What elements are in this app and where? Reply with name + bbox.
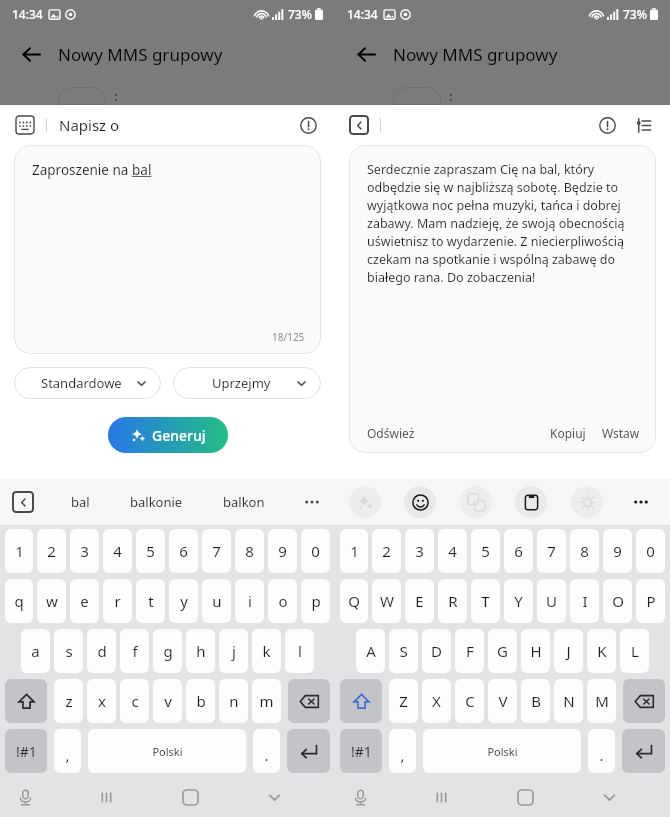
- button[interactable]: Informacje: [295, 112, 321, 138]
- button[interactable]: Polski: [88, 729, 246, 773]
- button[interactable]: 8: [570, 529, 599, 573]
- button[interactable]: D: [422, 629, 451, 673]
- button[interactable]: Ukryj klawiaturę: [592, 780, 626, 814]
- button[interactable]: !#1: [5, 729, 47, 773]
- button[interactable]: i: [235, 579, 264, 623]
- button[interactable]: Enter: [622, 729, 665, 773]
- button[interactable]: m: [252, 679, 281, 723]
- button[interactable]: a: [21, 629, 50, 673]
- button[interactable]: H: [521, 629, 550, 673]
- button[interactable]: Więcej: [626, 487, 656, 517]
- button[interactable]: V: [488, 679, 517, 723]
- button[interactable]: 3: [405, 529, 434, 573]
- button[interactable]: 7: [202, 529, 231, 573]
- button[interactable]: L: [620, 629, 649, 673]
- button[interactable]: Tłumacz: [460, 486, 492, 518]
- button[interactable]: W: [372, 579, 401, 623]
- button[interactable]: d: [87, 629, 116, 673]
- button[interactable]: C: [455, 679, 484, 723]
- button[interactable]: Więcej: [301, 491, 323, 513]
- button[interactable]: 7: [537, 529, 566, 573]
- button[interactable]: X: [422, 679, 451, 723]
- button[interactable]: Mikrofon: [10, 782, 40, 812]
- button[interactable]: Mikrofon: [345, 782, 375, 812]
- button[interactable]: c: [120, 679, 149, 723]
- button[interactable]: K: [587, 629, 616, 673]
- button[interactable]: g: [153, 629, 182, 673]
- button[interactable]: Ekran główny: [508, 780, 542, 814]
- button[interactable]: 2: [37, 529, 66, 573]
- button[interactable]: Q: [340, 579, 368, 623]
- button[interactable]: ,: [389, 729, 416, 773]
- button[interactable]: n: [219, 679, 248, 723]
- button[interactable]: ,: [54, 729, 81, 773]
- button[interactable]: Ostatnie: [89, 780, 123, 814]
- button[interactable]: Emoji: [404, 486, 436, 518]
- button[interactable]: 6: [169, 529, 198, 573]
- button[interactable]: balkon: [219, 487, 269, 517]
- button[interactable]: Asystent: [349, 486, 381, 518]
- button[interactable]: M: [587, 679, 616, 723]
- button[interactable]: .: [253, 729, 280, 773]
- button[interactable]: G: [488, 629, 517, 673]
- button[interactable]: Ustawienia tonu: [630, 112, 656, 138]
- button[interactable]: S: [389, 629, 418, 673]
- button[interactable]: 5: [471, 529, 500, 573]
- button[interactable]: Backspace: [288, 679, 330, 723]
- button[interactable]: R: [438, 579, 467, 623]
- button[interactable]: h: [186, 629, 215, 673]
- button[interactable]: Zaproszenie na: [14, 145, 321, 354]
- button[interactable]: I: [570, 579, 599, 623]
- button[interactable]: Ostatnie: [424, 780, 458, 814]
- button[interactable]: Wstecz: [14, 37, 48, 71]
- button[interactable]: A: [356, 629, 385, 673]
- button[interactable]: Standardowe: [28, 367, 147, 399]
- button[interactable]: 4: [438, 529, 467, 573]
- button[interactable]: Generuj: [108, 417, 228, 453]
- button[interactable]: bal: [67, 487, 94, 517]
- button[interactable]: O: [603, 579, 632, 623]
- button[interactable]: .: [588, 729, 615, 773]
- button[interactable]: l: [285, 629, 314, 673]
- button[interactable]: Enter: [287, 729, 330, 773]
- button[interactable]: Polski: [423, 729, 581, 773]
- button[interactable]: 5: [136, 529, 165, 573]
- button[interactable]: 4: [103, 529, 132, 573]
- button[interactable]: Z: [389, 679, 418, 723]
- button[interactable]: N: [554, 679, 583, 723]
- button[interactable]: 0: [636, 529, 665, 573]
- button[interactable]: Wstecz: [12, 491, 34, 513]
- button[interactable]: E: [405, 579, 434, 623]
- button[interactable]: u: [202, 579, 231, 623]
- button[interactable]: Shift: [340, 679, 382, 723]
- button[interactable]: P: [636, 579, 665, 623]
- button[interactable]: Kopiuj: [550, 425, 586, 441]
- button[interactable]: F: [455, 629, 484, 673]
- button[interactable]: b: [186, 679, 215, 723]
- button[interactable]: z: [54, 679, 83, 723]
- button[interactable]: Backspace: [623, 679, 665, 723]
- button[interactable]: w: [37, 579, 66, 623]
- button[interactable]: Wstecz: [349, 37, 383, 71]
- button[interactable]: r: [103, 579, 132, 623]
- button[interactable]: Ukryj klawiaturę: [257, 780, 291, 814]
- button[interactable]: 0: [301, 529, 330, 573]
- button[interactable]: f: [120, 629, 149, 673]
- button[interactable]: Schowek: [515, 486, 547, 518]
- button[interactable]: B: [521, 679, 550, 723]
- button[interactable]: t: [136, 579, 165, 623]
- button[interactable]: j: [219, 629, 248, 673]
- button[interactable]: J: [554, 629, 583, 673]
- button[interactable]: q: [5, 579, 33, 623]
- button[interactable]: 9: [268, 529, 297, 573]
- button[interactable]: k: [252, 629, 281, 673]
- button[interactable]: s: [54, 629, 83, 673]
- button[interactable]: 3: [70, 529, 99, 573]
- button[interactable]: 1: [5, 529, 33, 573]
- button[interactable]: 8: [235, 529, 264, 573]
- button[interactable]: Uprzejmy: [187, 367, 307, 399]
- button[interactable]: !#1: [340, 729, 382, 773]
- button[interactable]: Informacje: [594, 112, 620, 138]
- button[interactable]: 2: [372, 529, 401, 573]
- button[interactable]: Ustawienia: [571, 486, 603, 518]
